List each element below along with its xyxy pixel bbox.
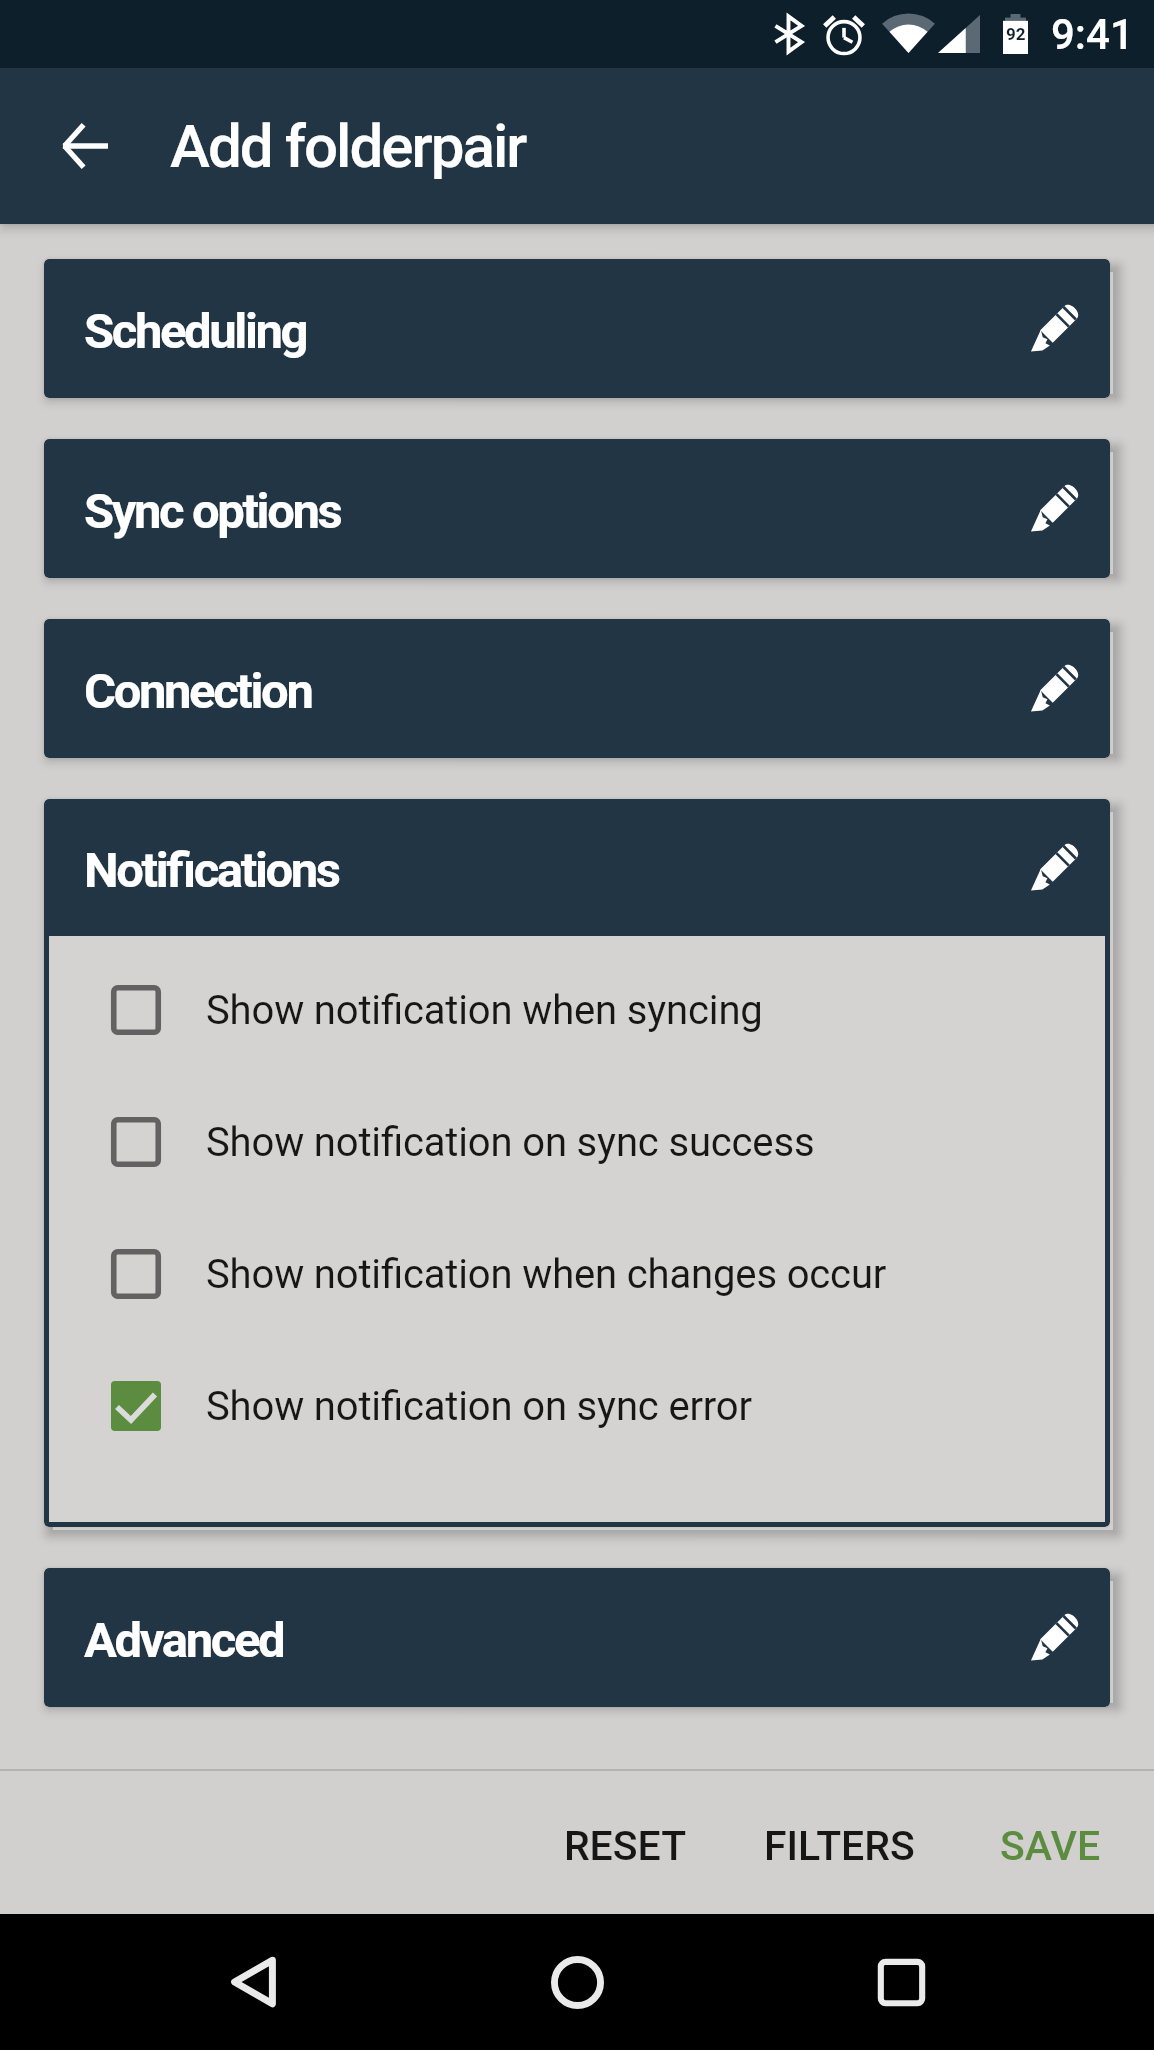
button[interactable]: Home	[497, 1914, 657, 2050]
staticText: Show notification when changes occur	[206, 1251, 887, 1298]
staticText: FILTERS	[764, 1822, 915, 1870]
button[interactable]: Connection	[44, 619, 1110, 758]
staticText: Advanced	[84, 1612, 284, 1669]
button[interactable]: Edit Advanced	[998, 1568, 1110, 1707]
button[interactable]: Edit Sync options	[998, 439, 1110, 578]
button[interactable]: Notifications	[44, 799, 1110, 936]
button[interactable]: Back	[173, 1914, 333, 2050]
button[interactable]: Show notification on sync error	[49, 1340, 1105, 1472]
staticText: Show notification when syncing	[206, 987, 763, 1034]
button[interactable]: Navigate up	[0, 68, 170, 224]
button[interactable]: Scheduling	[44, 259, 1110, 398]
staticText: 92	[1006, 24, 1026, 44]
staticText: Sync options	[84, 483, 341, 540]
staticText: Connection	[84, 663, 312, 720]
button[interactable]: SAVE	[1000, 1822, 1101, 1870]
button[interactable]: Show notification when syncing	[49, 944, 1105, 1076]
staticText: Notifications	[84, 842, 339, 899]
button[interactable]: RESET	[564, 1822, 687, 1870]
button[interactable]: Show notification on sync success	[49, 1076, 1105, 1208]
staticText: SAVE	[1000, 1822, 1101, 1870]
button[interactable]: FILTERS	[764, 1822, 915, 1870]
button[interactable]: Edit Connection	[998, 619, 1110, 758]
staticText: Show notification on sync error	[206, 1383, 752, 1430]
button[interactable]: Advanced	[44, 1568, 1110, 1707]
staticText: Scheduling	[84, 303, 307, 360]
button[interactable]: Edit Notifications	[998, 799, 1110, 936]
button[interactable]: Recent apps	[821, 1914, 981, 2050]
staticText: Add folderpair	[170, 111, 526, 181]
button[interactable]: Sync options	[44, 439, 1110, 578]
staticText: 9:41	[1051, 10, 1134, 59]
staticText: RESET	[564, 1822, 687, 1870]
button[interactable]: Show notification when changes occur	[49, 1208, 1105, 1340]
staticText: Show notification on sync success	[206, 1119, 815, 1166]
button[interactable]: Edit Scheduling	[998, 259, 1110, 398]
